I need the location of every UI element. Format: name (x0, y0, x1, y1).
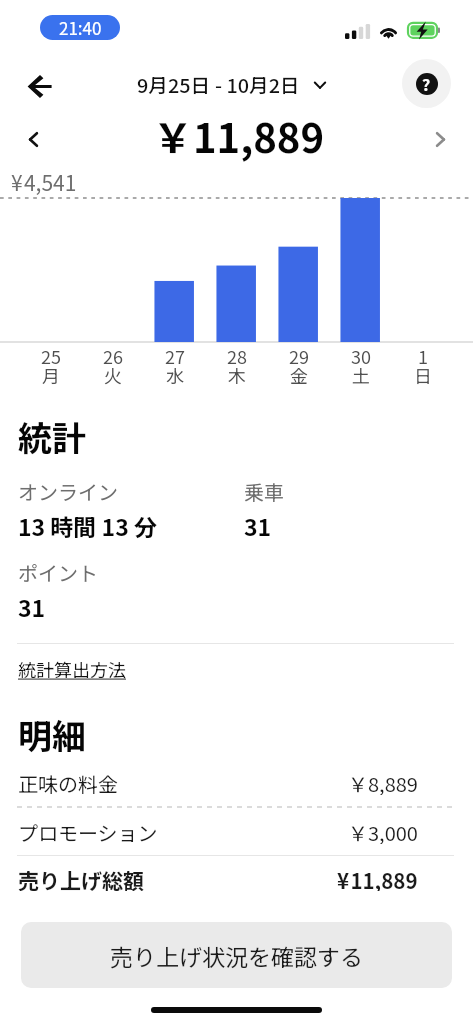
staticText: 乗車 (244, 477, 284, 506)
staticText: 29 (289, 343, 309, 369)
button[interactable]: 売り上げ状況を確認する (21, 922, 452, 988)
staticText: ￥11,889 (153, 107, 324, 165)
staticText: ￥3,000 (348, 818, 418, 844)
button[interactable]: Back (15, 62, 63, 110)
staticText: オンライン (18, 477, 118, 506)
staticText: 21:40 (59, 15, 102, 40)
button[interactable]: 売り上げ総額 (18, 865, 418, 891)
button[interactable]: Previous week (12, 118, 54, 160)
staticText: ￥8,889 (348, 769, 418, 795)
button[interactable]: プロモーション (18, 818, 418, 844)
staticText: 1 (418, 343, 428, 369)
staticText: 金 (290, 362, 308, 388)
button[interactable]: Next week (419, 118, 461, 160)
button[interactable]: 統計算出方法 (18, 656, 126, 682)
staticText: プロモーション (18, 818, 158, 844)
staticText: 28 (227, 343, 247, 369)
staticText: 水 (166, 362, 184, 388)
staticText: 売り上げ状況を確認する (110, 939, 363, 972)
staticText: ? (422, 72, 431, 95)
staticText: ¥ 4,541 (11, 167, 77, 197)
staticText: 明細 (18, 710, 86, 759)
button[interactable]: 正味の料金 (18, 769, 418, 795)
staticText: ¥ 11,889 (337, 865, 418, 891)
staticText: 30 (351, 343, 371, 369)
staticText: 売り上げ総額 (18, 865, 144, 891)
staticText: ポイント (18, 558, 98, 587)
staticText: 日 (414, 362, 432, 388)
staticText: 火 (104, 362, 122, 388)
staticText: 31 (244, 509, 272, 542)
staticText: 木 (228, 362, 246, 388)
staticText: 27 (165, 343, 185, 369)
staticText: 26 (103, 343, 123, 369)
staticText: 13 時間 13 分 (18, 509, 157, 542)
staticText: 9月25日 - 10月2日 (137, 70, 300, 99)
staticText: 25 (41, 343, 61, 369)
button[interactable]: 9月25日 - 10月2日 (137, 70, 326, 99)
staticText: 正味の料金 (18, 769, 118, 795)
staticText: 統計 (18, 412, 86, 461)
staticText: 31 (18, 590, 46, 623)
staticText: 月 (42, 362, 60, 388)
button[interactable]: Help (402, 59, 451, 108)
staticText: 土 (352, 362, 370, 388)
